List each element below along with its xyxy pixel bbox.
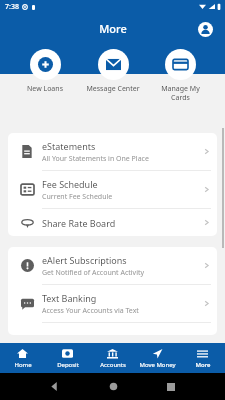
button[interactable]: New Loans [12, 49, 78, 94]
button[interactable]: Home [0, 343, 45, 373]
staticText: Access Your Accounts via Text [42, 306, 139, 316]
staticText: 7:38 [5, 2, 19, 12]
button[interactable]: eAlert Subscriptions [8, 247, 217, 284]
staticText: Share Rate Board [42, 217, 116, 229]
button[interactable]: Text Banking [8, 285, 217, 322]
button[interactable]: Accounts [90, 343, 135, 373]
staticText: eAlert Subscriptions [42, 254, 127, 266]
staticText: New Loans [27, 84, 63, 94]
staticText: Manage My Cards [161, 84, 200, 102]
button[interactable]: Message Center [80, 49, 146, 94]
button[interactable]: Manage My Cards [147, 49, 213, 102]
staticText: All Your Statements in One Place [42, 154, 149, 164]
button[interactable]: Share Rate Board [8, 209, 217, 236]
staticText: Deposit [57, 361, 79, 369]
button[interactable]: Deposit [45, 343, 90, 373]
button[interactable]: Move Money [135, 343, 180, 373]
staticText: Accounts [100, 361, 126, 369]
staticText: Home [14, 361, 32, 369]
staticText: Move Money [139, 361, 176, 369]
button[interactable]: Profile [193, 17, 217, 41]
staticText: Fee Schedule [42, 178, 98, 190]
staticText: Get Notified of Account Activity [42, 268, 145, 278]
staticText: Message Center [86, 84, 140, 94]
button[interactable]: eStatements [8, 133, 217, 170]
staticText: Current Fee Schedule [42, 192, 113, 202]
staticText: Text Banking [42, 292, 97, 304]
button[interactable]: More [180, 343, 225, 373]
staticText: More [195, 361, 211, 369]
staticText: eStatements [42, 140, 96, 152]
staticText: More [99, 21, 127, 36]
button[interactable]: Fee Schedule [8, 171, 217, 208]
